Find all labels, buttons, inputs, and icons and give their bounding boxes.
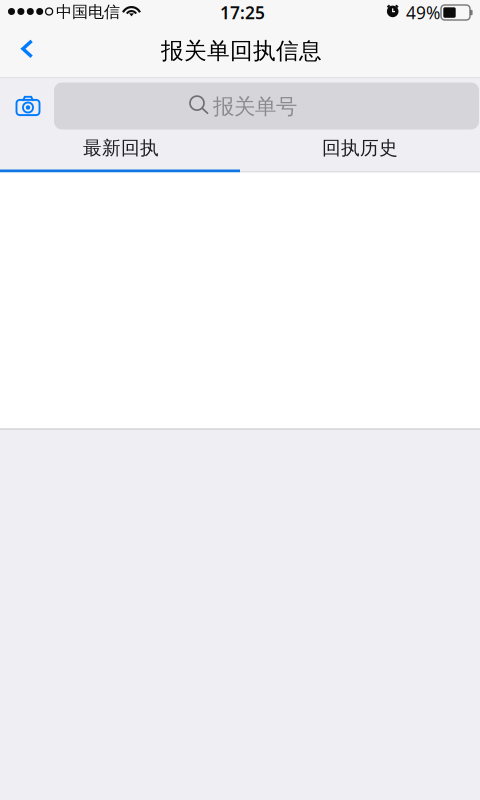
button[interactable]: Back [10, 31, 54, 75]
staticText: 报关单号 [213, 93, 297, 120]
staticText: 49% [406, 1, 440, 24]
staticText: 中国电信 [56, 2, 120, 22]
staticText: 报关单回执信息 [161, 37, 322, 65]
button[interactable]: Scan barcode [6, 83, 50, 127]
staticText: 回执历史 [322, 136, 398, 159]
button[interactable]: 报关单号 [54, 82, 479, 129]
staticText: 最新回执 [83, 136, 159, 159]
button[interactable]: 回执历史 [240, 132, 480, 169]
button[interactable]: 最新回执 [0, 132, 240, 169]
staticText: 17:25 [220, 1, 265, 24]
